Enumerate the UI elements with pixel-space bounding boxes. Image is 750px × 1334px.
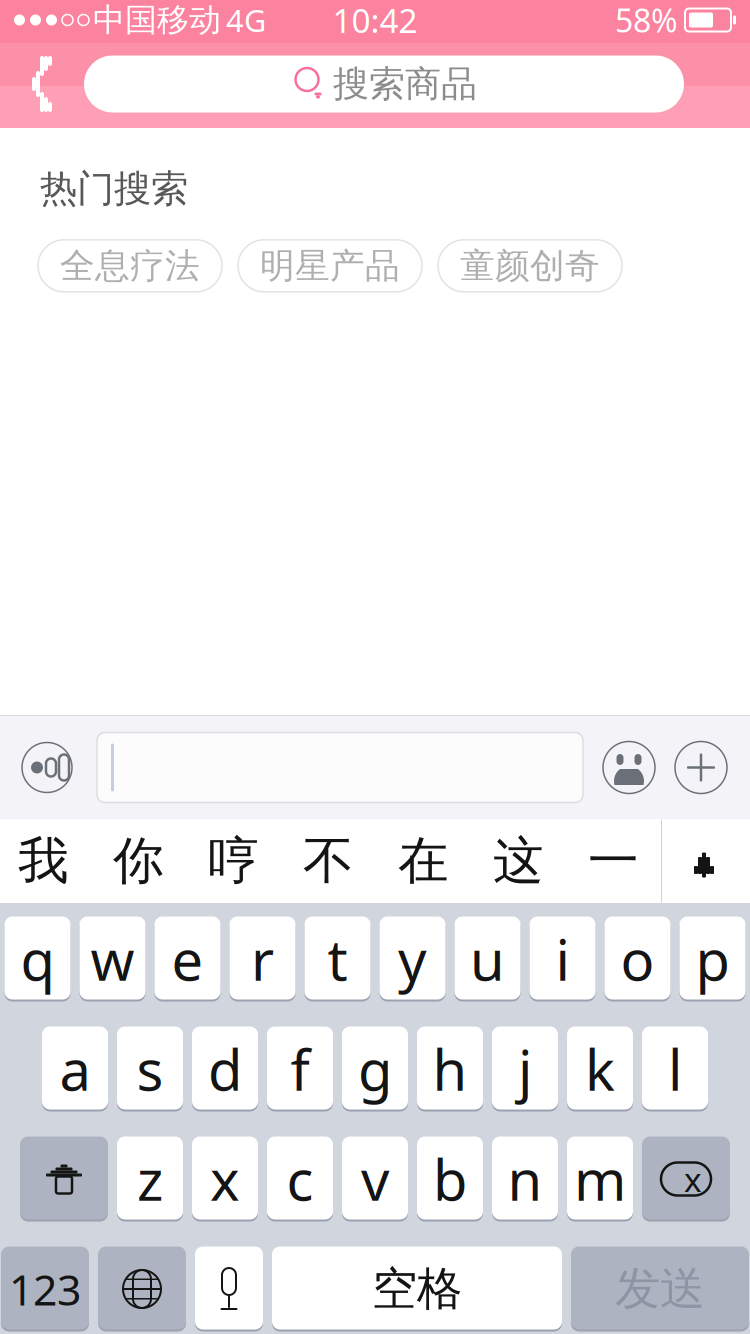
staticText: h: [432, 1032, 467, 1106]
staticText: 明星产品: [260, 245, 400, 287]
staticText: 123: [9, 1261, 81, 1317]
staticText: 不: [303, 830, 354, 892]
staticText: b: [433, 1142, 467, 1216]
button[interactable]: 我: [0, 819, 91, 902]
staticText: k: [585, 1032, 615, 1106]
button[interactable]: Delete: [642, 1136, 730, 1221]
staticText: r: [251, 922, 274, 996]
button[interactable]: a: [42, 1026, 108, 1111]
button[interactable]: Voice input: [21, 741, 73, 793]
button[interactable]: 这: [471, 819, 566, 902]
button[interactable]: v: [342, 1136, 408, 1221]
staticText: a: [59, 1032, 90, 1106]
staticText: p: [695, 922, 729, 996]
button[interactable]: j: [492, 1026, 558, 1111]
staticText: z: [137, 1142, 163, 1216]
staticText: 中国移动: [93, 0, 221, 40]
button[interactable]: [97, 732, 583, 802]
staticText: w: [90, 922, 134, 996]
button[interactable]: Dictation: [195, 1246, 263, 1331]
staticText: 热门搜索: [40, 166, 188, 212]
staticText: 哼: [208, 830, 259, 892]
button[interactable]: w: [79, 916, 145, 1001]
button[interactable]: k: [567, 1026, 633, 1111]
staticText: 4G: [226, 0, 266, 40]
button[interactable]: f: [267, 1026, 333, 1111]
staticText: 你: [113, 830, 164, 892]
button[interactable]: s: [117, 1026, 183, 1111]
staticText: s: [136, 1032, 163, 1106]
button[interactable]: m: [567, 1136, 633, 1221]
button[interactable]: Shift: [20, 1136, 108, 1221]
button[interactable]: 搜索商品: [84, 55, 684, 112]
staticText: o: [620, 922, 654, 996]
staticText: x: [684, 1157, 702, 1201]
button[interactable]: 发送: [571, 1246, 749, 1331]
button[interactable]: 全息疗法: [38, 240, 222, 292]
staticText: m: [574, 1142, 626, 1216]
staticText: v: [361, 1142, 389, 1216]
button[interactable]: d: [192, 1026, 258, 1111]
staticText: 我: [18, 830, 69, 892]
button[interactable]: x: [192, 1136, 258, 1221]
staticText: 发送: [615, 1261, 705, 1317]
staticText: y: [398, 922, 427, 996]
button[interactable]: y: [379, 916, 445, 1001]
button[interactable]: h: [417, 1026, 483, 1111]
button[interactable]: e: [154, 916, 220, 1001]
button[interactable]: 不: [281, 819, 376, 902]
button[interactable]: More options: [674, 740, 728, 794]
button[interactable]: 哼: [186, 819, 281, 902]
button[interactable]: g: [342, 1026, 408, 1111]
staticText: c: [286, 1142, 313, 1216]
staticText: f: [290, 1032, 309, 1106]
button[interactable]: i: [529, 916, 595, 1001]
staticText: g: [358, 1032, 392, 1106]
button[interactable]: u: [454, 916, 520, 1001]
button[interactable]: r: [229, 916, 295, 1001]
button[interactable]: p: [679, 916, 745, 1001]
staticText: l: [668, 1032, 682, 1106]
button[interactable]: Emoji: [602, 740, 656, 794]
staticText: e: [171, 922, 203, 996]
staticText: x: [210, 1142, 240, 1216]
staticText: 这: [493, 830, 544, 892]
button[interactable]: o: [604, 916, 670, 1001]
button[interactable]: l: [642, 1026, 708, 1111]
button[interactable]: 你: [91, 819, 186, 902]
button[interactable]: 空格: [272, 1246, 562, 1331]
staticText: 全息疗法: [60, 245, 200, 287]
button[interactable]: z: [117, 1136, 183, 1221]
staticText: 一: [588, 830, 639, 892]
staticText: d: [208, 1032, 242, 1106]
staticText: n: [507, 1142, 542, 1216]
staticText: i: [555, 922, 569, 996]
button[interactable]: b: [417, 1136, 483, 1221]
button[interactable]: t: [304, 916, 370, 1001]
button[interactable]: q: [4, 916, 70, 1001]
button[interactable]: Change keyboard: [98, 1246, 186, 1331]
button[interactable]: 童颜创奇: [438, 240, 622, 292]
staticText: u: [470, 922, 505, 996]
button[interactable]: c: [267, 1136, 333, 1221]
staticText: 在: [398, 830, 449, 892]
button[interactable]: Numbers: [1, 1246, 89, 1331]
staticText: 童颜创奇: [460, 245, 600, 287]
button[interactable]: Back: [0, 44, 84, 124]
button[interactable]: 一: [566, 819, 661, 902]
button[interactable]: n: [492, 1136, 558, 1221]
staticText: j: [518, 1032, 532, 1106]
button[interactable]: More candidates: [662, 819, 746, 902]
staticText: 10:42: [332, 0, 417, 42]
staticText: q: [20, 922, 54, 996]
button[interactable]: 明星产品: [238, 240, 422, 292]
staticText: 空格: [372, 1261, 462, 1317]
button[interactable]: 在: [376, 819, 471, 902]
staticText: 58%: [615, 0, 678, 41]
staticText: t: [327, 922, 347, 996]
staticText: 搜索商品: [333, 62, 477, 106]
